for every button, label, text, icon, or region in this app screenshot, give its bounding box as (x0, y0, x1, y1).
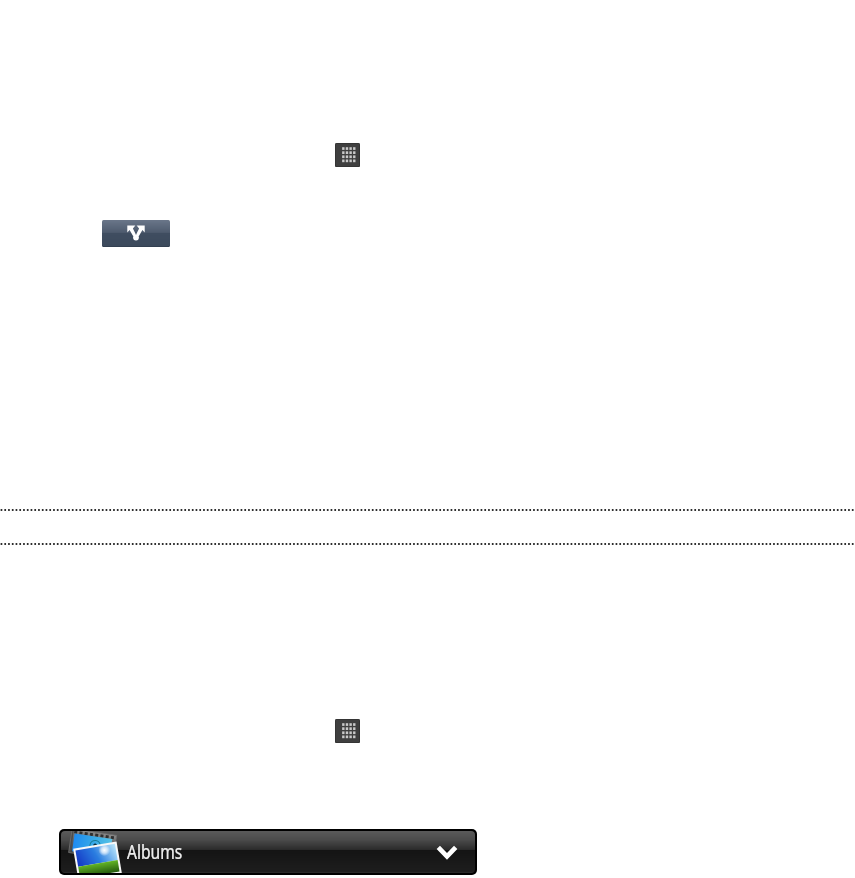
button[interactable]: Share (102, 220, 170, 247)
button[interactable]: Albums (61, 831, 475, 873)
staticText: Albums (127, 838, 182, 865)
button[interactable]: Expand album list (427, 832, 467, 872)
button[interactable]: All apps (335, 143, 360, 167)
button[interactable]: All apps (335, 719, 360, 743)
